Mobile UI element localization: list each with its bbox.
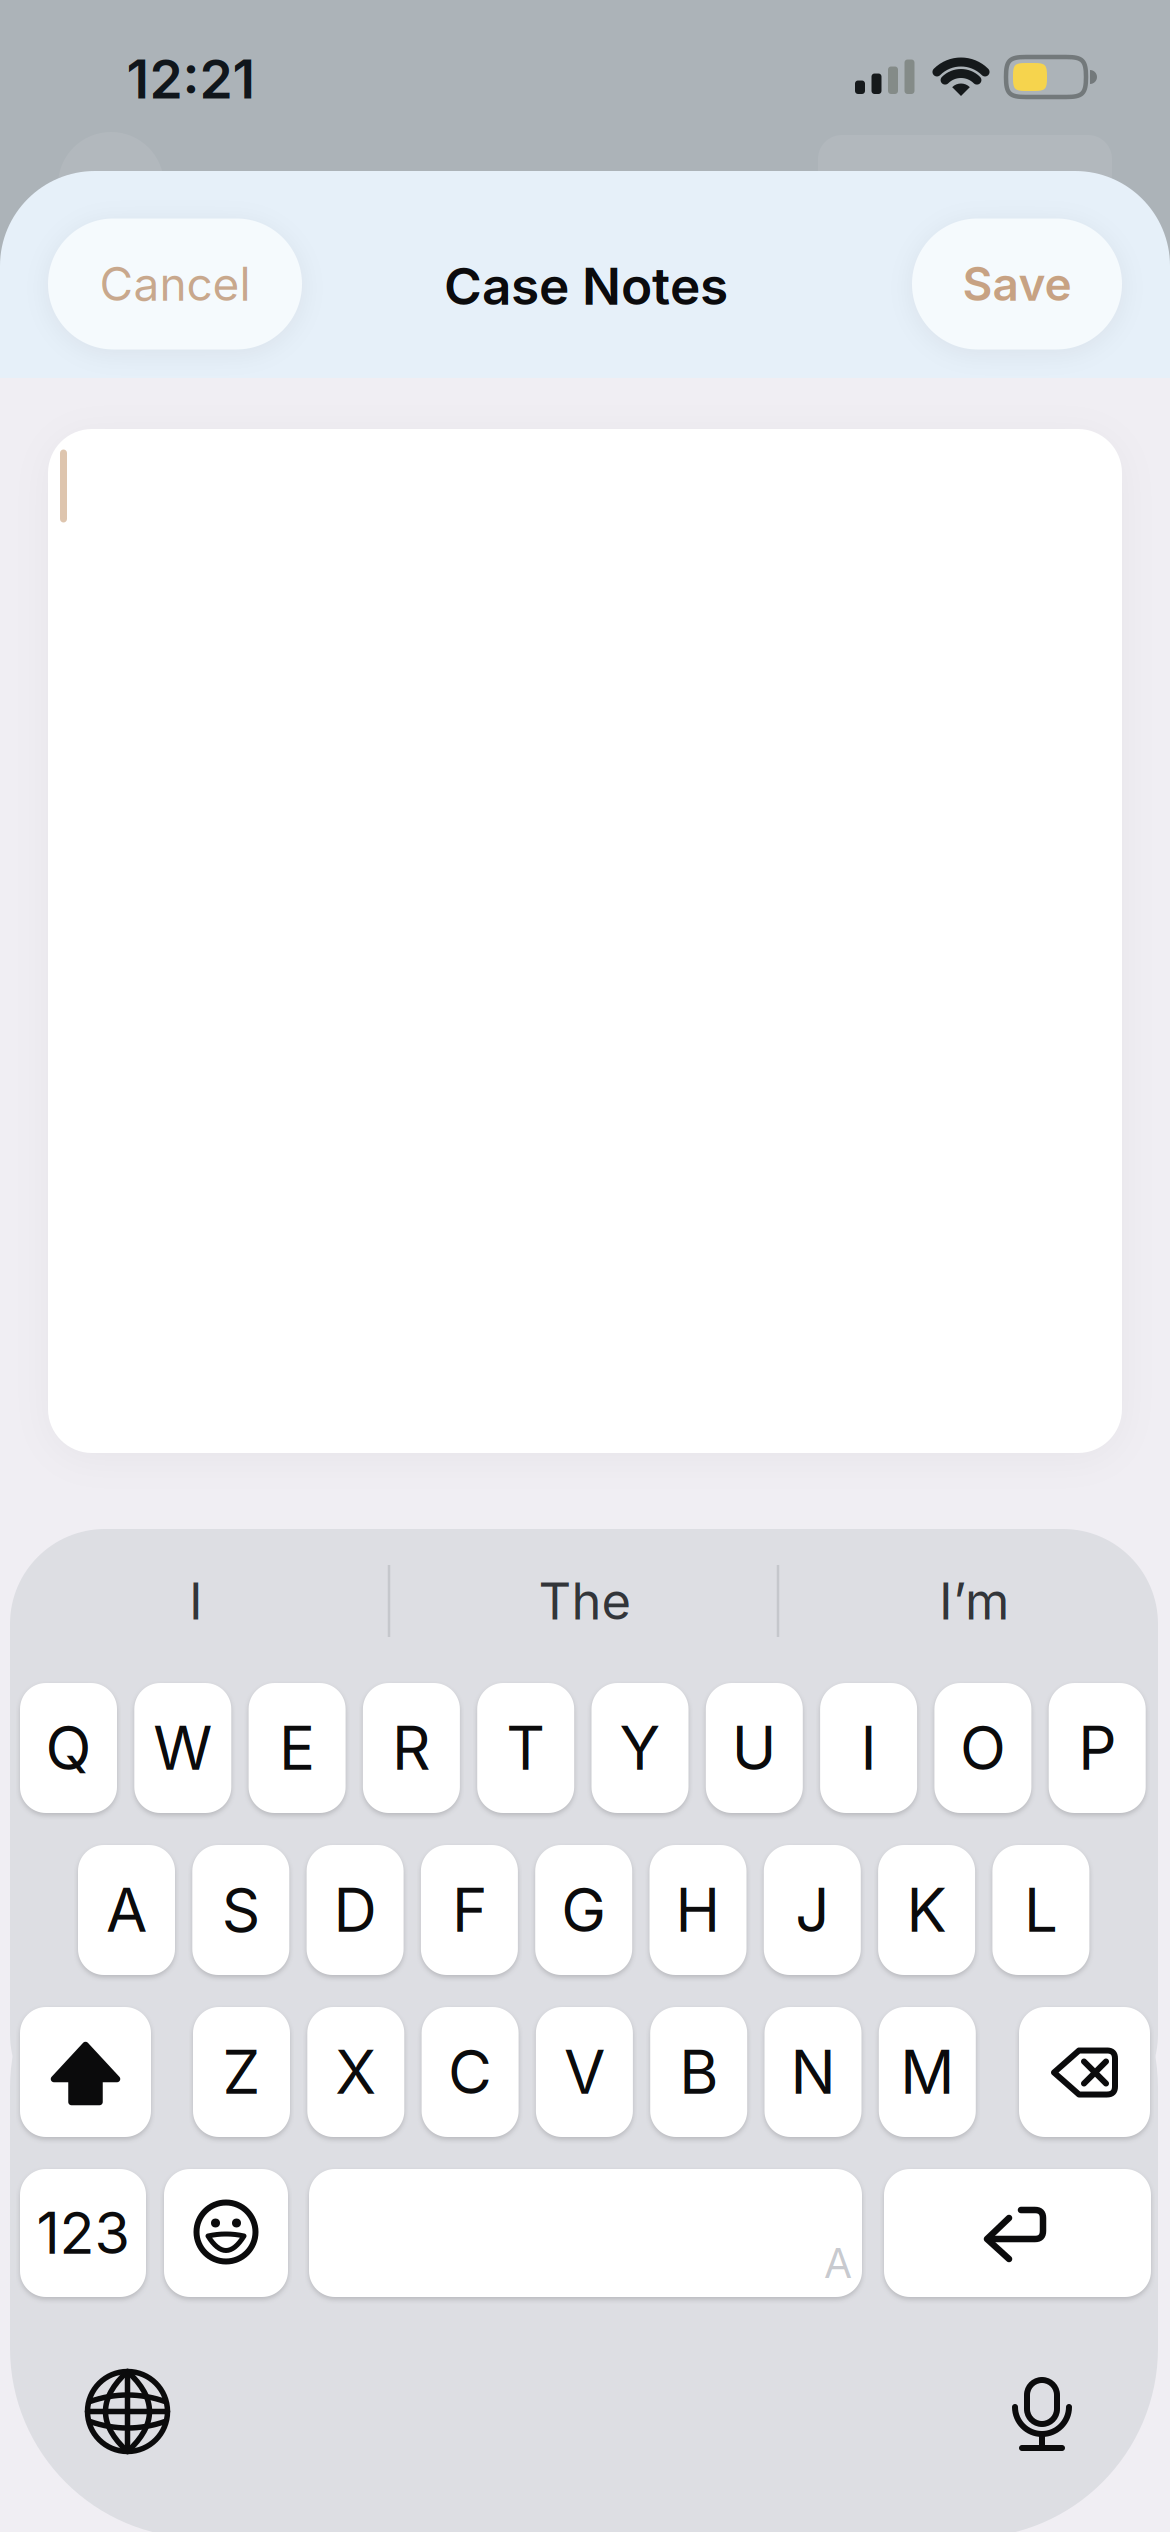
button[interactable]: I’m <box>789 1546 1159 1656</box>
staticText: The <box>538 1570 631 1632</box>
button[interactable]: I <box>11 1546 381 1656</box>
staticText: C <box>448 2036 492 2108</box>
staticText: I <box>861 1712 877 1784</box>
button[interactable]: L <box>992 1845 1089 1975</box>
button[interactable]: The <box>400 1546 770 1656</box>
button[interactable]: Next keyboard <box>77 2361 177 2461</box>
staticText: B <box>679 2036 718 2108</box>
staticText: O <box>960 1712 1006 1784</box>
staticText: H <box>675 1874 720 1946</box>
staticText: S <box>222 1874 260 1946</box>
button[interactable]: A <box>78 1845 175 1975</box>
staticText: Cancel <box>99 256 250 312</box>
staticText: G <box>561 1874 606 1946</box>
staticText: W <box>153 1712 212 1784</box>
button[interactable]: Delete <box>1019 2007 1150 2137</box>
staticText: I’m <box>939 1570 1009 1632</box>
button[interactable]: P <box>1049 1683 1146 1813</box>
staticText: L <box>1024 1874 1058 1946</box>
button[interactable]: M <box>879 2007 976 2137</box>
button[interactable]: 123 <box>20 2169 146 2297</box>
button[interactable]: Q <box>20 1683 117 1813</box>
button[interactable]: Dictation <box>992 2362 1092 2462</box>
staticText: Q <box>45 1712 91 1784</box>
staticText: Save <box>962 256 1071 312</box>
button[interactable]: H <box>649 1845 746 1975</box>
button[interactable]: G <box>535 1845 632 1975</box>
button[interactable]: I <box>820 1683 917 1813</box>
button[interactable]: E <box>249 1683 346 1813</box>
button[interactable]: Shift <box>20 2007 151 2137</box>
button[interactable]: Space <box>309 2169 862 2297</box>
staticText: P <box>1078 1712 1116 1784</box>
staticText: A <box>824 2238 851 2288</box>
staticText: Y <box>619 1712 660 1784</box>
button[interactable]: C <box>422 2007 519 2137</box>
staticText: V <box>564 2036 605 2108</box>
staticText: A <box>106 1874 147 1946</box>
staticText: X <box>335 2036 376 2108</box>
staticText: T <box>506 1712 545 1784</box>
button[interactable]: N <box>764 2007 861 2137</box>
button[interactable]: Z <box>193 2007 290 2137</box>
staticText: K <box>907 1874 947 1946</box>
staticText: 123 <box>36 2198 129 2268</box>
button[interactable]: Y <box>591 1683 688 1813</box>
staticText: M <box>900 2036 954 2108</box>
button[interactable]: Return <box>884 2169 1151 2297</box>
button[interactable]: O <box>934 1683 1031 1813</box>
staticText: Z <box>222 2036 260 2108</box>
staticText: Case Notes <box>444 255 728 317</box>
button[interactable]: Save <box>912 218 1122 349</box>
staticText: 12:21 <box>126 47 255 111</box>
staticText: D <box>334 1874 377 1946</box>
button[interactable]: Cancel <box>48 218 302 349</box>
button[interactable]: X <box>307 2007 404 2137</box>
button[interactable]: F <box>421 1845 518 1975</box>
button[interactable]: R <box>363 1683 460 1813</box>
button[interactable]: K <box>878 1845 975 1975</box>
staticText: R <box>392 1712 431 1784</box>
button[interactable]: U <box>706 1683 803 1813</box>
button[interactable]: V <box>536 2007 633 2137</box>
button[interactable]: B <box>650 2007 747 2137</box>
button[interactable]: W <box>134 1683 231 1813</box>
button[interactable]: T <box>477 1683 574 1813</box>
button[interactable]: D <box>307 1845 404 1975</box>
staticText: I <box>189 1570 203 1632</box>
staticText: J <box>795 1874 829 1946</box>
button[interactable]: S <box>192 1845 289 1975</box>
button[interactable]: J <box>764 1845 861 1975</box>
staticText: N <box>790 2036 835 2108</box>
staticText: U <box>732 1712 777 1784</box>
button[interactable]: Emoji <box>164 2169 288 2297</box>
staticText: E <box>279 1712 315 1784</box>
staticText: F <box>452 1874 487 1946</box>
